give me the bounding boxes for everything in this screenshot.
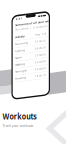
staticText: Swim (15, 57, 21, 60)
staticText: 40m (35, 70, 41, 74)
staticText: Track your workouts (2, 123, 38, 128)
staticText: 260 (40, 70, 46, 74)
staticText: 210 (40, 77, 46, 81)
staticText: 180 (40, 64, 46, 67)
staticText: 48m (35, 50, 41, 53)
staticText: Rowing (15, 77, 26, 81)
staticText: This week • 6 sessions (15, 28, 47, 32)
staticText: 32m (35, 43, 41, 46)
staticText: Summary of all your workouts (15, 24, 58, 27)
staticText: 18m (35, 77, 41, 81)
staticText: 55m (35, 64, 41, 67)
staticText: 520 (40, 50, 46, 53)
staticText: Strength (15, 70, 27, 74)
staticText: 300 (40, 57, 46, 60)
staticText: Walking (15, 64, 25, 67)
staticText: 9:41 (15, 18, 22, 21)
staticText: Workouts (2, 111, 41, 122)
staticText: Cycling (15, 50, 25, 53)
staticText: Activity (15, 36, 24, 39)
staticText: 25m (35, 57, 41, 60)
staticText: Running (15, 43, 28, 46)
staticText: Time (35, 36, 41, 39)
staticText: Cal (42, 36, 46, 39)
staticText: 410 (40, 43, 46, 46)
